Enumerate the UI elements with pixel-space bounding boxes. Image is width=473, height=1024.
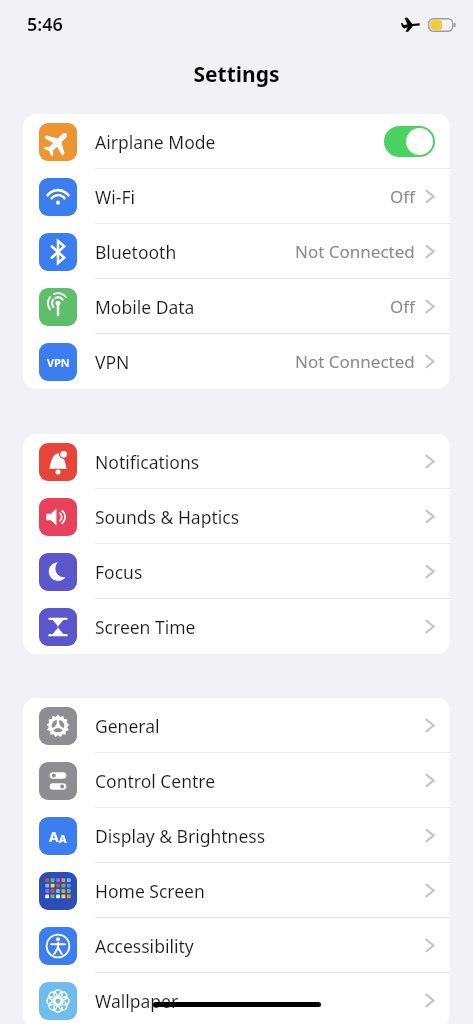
- staticText: Wallpaper: [95, 989, 179, 1013]
- button[interactable]: VPN: [23, 334, 450, 389]
- staticText: Bluetooth: [95, 240, 177, 264]
- staticText: Focus: [95, 560, 143, 584]
- staticText: General: [95, 714, 160, 738]
- staticText: VPN: [95, 350, 130, 374]
- staticText: Not Connected: [295, 350, 415, 373]
- button[interactable]: Wallpaper: [23, 973, 450, 1024]
- staticText: Mobile Data: [95, 295, 195, 319]
- staticText: VPN: [47, 355, 70, 370]
- staticText: A: [49, 827, 59, 846]
- staticText: Wi-Fi: [95, 185, 136, 209]
- staticText: A: [59, 831, 67, 846]
- staticText: Screen Time: [95, 615, 196, 639]
- button[interactable]: Control Centre: [23, 753, 450, 808]
- staticText: Not Connected: [295, 240, 415, 263]
- staticText: Notifications: [95, 450, 200, 474]
- button[interactable]: Sounds & Haptics: [23, 489, 450, 544]
- button[interactable]: Wi-Fi: [23, 169, 450, 224]
- button[interactable]: Airplane Mode: [23, 114, 450, 169]
- button[interactable]: A: [23, 808, 450, 863]
- button[interactable]: Bluetooth: [23, 224, 450, 279]
- staticText: Off: [390, 295, 415, 318]
- button[interactable]: Airplane Mode toggle, on: [384, 126, 435, 157]
- button[interactable]: Screen Time: [23, 599, 450, 654]
- staticText: Off: [390, 185, 415, 208]
- button[interactable]: Mobile Data: [23, 279, 450, 334]
- staticText: Display & Brightness: [95, 824, 266, 848]
- button[interactable]: Notifications: [23, 434, 450, 489]
- staticText: 5:46: [27, 12, 63, 37]
- button[interactable]: Home Screen: [23, 863, 450, 918]
- button[interactable]: General: [23, 698, 450, 753]
- button[interactable]: Focus: [23, 544, 450, 599]
- staticText: Control Centre: [95, 769, 216, 793]
- button[interactable]: Accessibility: [23, 918, 450, 973]
- staticText: Airplane Mode: [95, 130, 216, 154]
- staticText: Sounds & Haptics: [95, 505, 240, 529]
- staticText: Home Screen: [95, 879, 205, 903]
- staticText: Accessibility: [95, 934, 194, 958]
- staticText: Settings: [193, 60, 280, 89]
